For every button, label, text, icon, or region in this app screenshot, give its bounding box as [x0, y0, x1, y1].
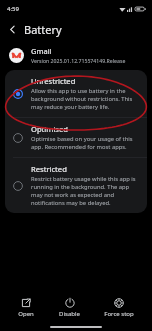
staticText: Allow this app to use battery in the bac…	[31, 87, 139, 111]
staticText: Battery	[24, 22, 62, 37]
button[interactable]: Optimised	[5, 118, 147, 157]
button[interactable]: Open	[12, 296, 40, 320]
button[interactable]: Back	[0, 17, 24, 41]
staticText: Restricted	[31, 164, 67, 174]
staticText: 4:59	[7, 5, 19, 13]
button[interactable]: Disable	[53, 296, 86, 320]
staticText: Force stop	[104, 310, 134, 318]
button[interactable]: Unrestricted	[5, 70, 147, 117]
staticText: Open	[18, 310, 34, 318]
staticText: Unrestricted	[31, 76, 76, 86]
staticText: Disable	[59, 310, 80, 318]
staticText: Version 2025.01.12.715574149.Release	[31, 57, 126, 64]
staticText: Restrict battery usage while this app is…	[31, 175, 139, 207]
staticText: Optimise based on your usage of this app…	[31, 135, 139, 151]
staticText: Gmail	[31, 46, 52, 56]
button[interactable]: Force stop	[98, 296, 140, 320]
staticText: Optimised	[31, 124, 68, 134]
button[interactable]: Restricted	[5, 158, 147, 213]
